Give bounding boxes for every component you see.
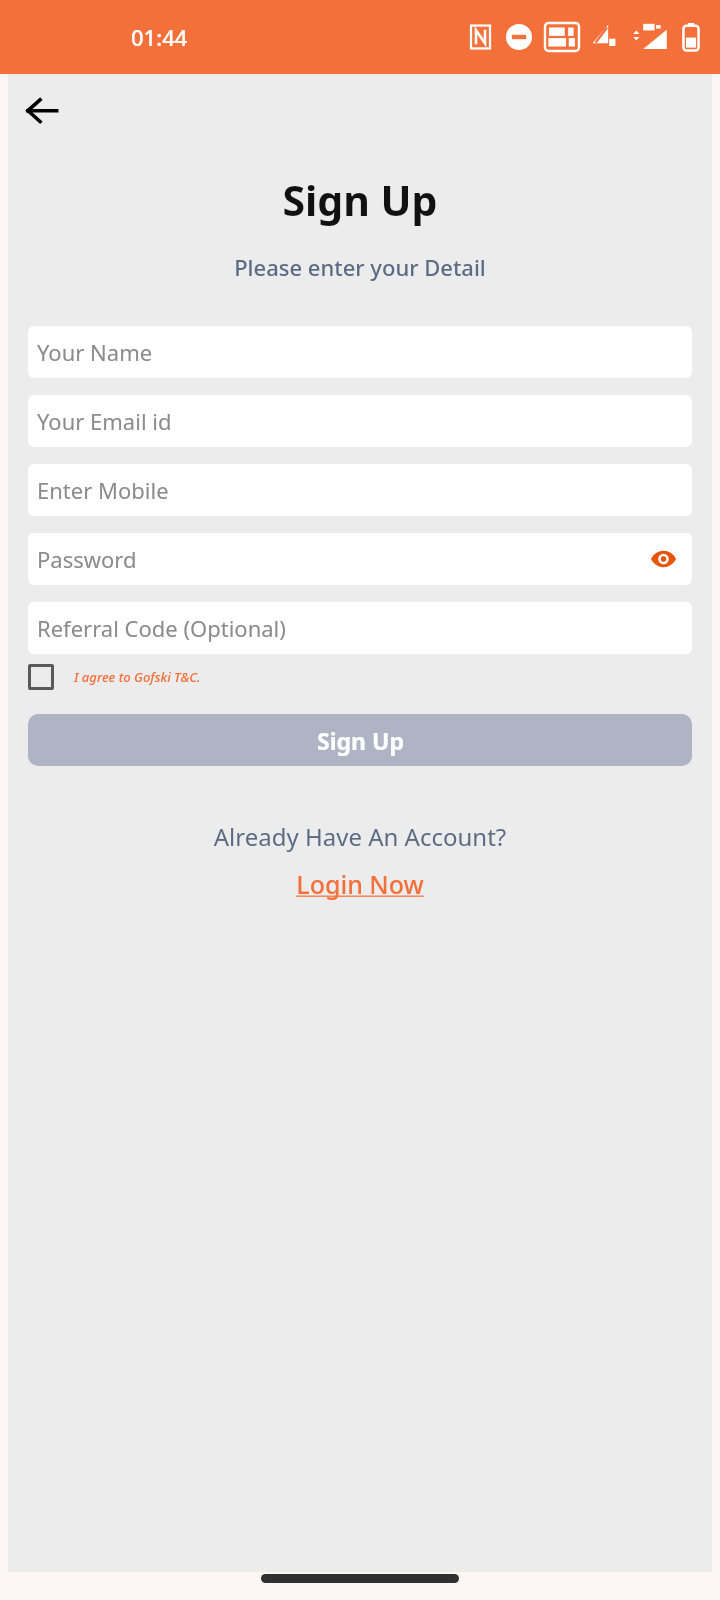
staticText: Referral Code (Optional) [37, 613, 286, 643]
staticText: Sign Up [8, 172, 712, 228]
button[interactable]: I agree to Gofski T&C. [28, 664, 692, 690]
button[interactable]: Show password [643, 539, 683, 579]
staticText: Login Now [296, 867, 424, 901]
staticText: I agree to Gofski T&C. [74, 668, 201, 686]
button[interactable]: Enter Mobile [28, 464, 692, 516]
button[interactable]: Password [28, 533, 692, 585]
staticText: Sign Up [317, 725, 404, 756]
staticText: Already Have An Account? [8, 820, 712, 853]
button[interactable]: Referral Code (Optional) [28, 602, 692, 654]
button[interactable]: Your Name [28, 326, 692, 378]
staticText: 01:44 [131, 22, 188, 52]
button[interactable]: Your Email id [28, 395, 692, 447]
staticText: Please enter your Detail [8, 252, 712, 282]
staticText: Enter Mobile [37, 475, 169, 505]
staticText: Password [37, 544, 137, 574]
button[interactable]: Login Now [290, 865, 430, 903]
button[interactable]: Back [14, 82, 70, 138]
button[interactable]: Sign Up [28, 714, 692, 766]
staticText: Your Name [37, 337, 153, 367]
staticText: Your Email id [37, 406, 172, 436]
